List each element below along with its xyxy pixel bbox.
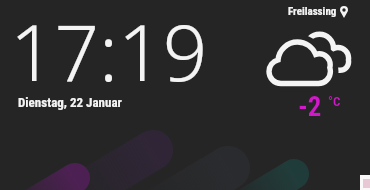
staticText: °C	[328, 94, 341, 109]
staticText: Dienstag, 22 Januar	[18, 95, 122, 110]
staticText: -2	[298, 91, 322, 123]
staticText: 17:19	[10, 0, 208, 104]
button[interactable]	[360, 175, 370, 190]
staticText: Freilassing	[288, 5, 337, 18]
other: Location	[340, 6, 348, 18]
